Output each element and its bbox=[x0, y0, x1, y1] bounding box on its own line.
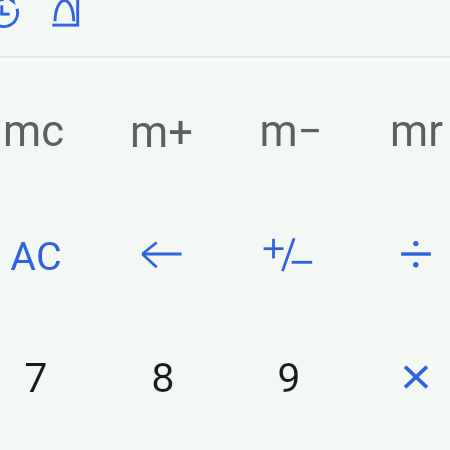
button[interactable]: m− bbox=[226, 72, 353, 194]
button[interactable]: 9 bbox=[226, 316, 353, 438]
staticText: 9 bbox=[277, 353, 301, 402]
button[interactable]: mr bbox=[353, 72, 450, 194]
button[interactable]: mc bbox=[0, 72, 99, 194]
button[interactable]: Plus minus bbox=[226, 194, 353, 316]
button[interactable]: Graph bbox=[39, 0, 91, 41]
staticText: AC bbox=[10, 233, 62, 279]
button[interactable]: Divide bbox=[353, 194, 450, 316]
button[interactable]: History bbox=[0, 0, 30, 39]
staticText: mc bbox=[3, 106, 64, 157]
staticText: m− bbox=[259, 106, 323, 157]
button[interactable]: AC bbox=[0, 194, 99, 316]
button[interactable]: 7 bbox=[0, 316, 99, 438]
staticText: 8 bbox=[151, 353, 175, 402]
button[interactable]: m+ bbox=[99, 72, 226, 194]
staticText: 7 bbox=[24, 353, 48, 402]
staticText: m+ bbox=[130, 107, 193, 158]
button[interactable]: Backspace bbox=[99, 194, 226, 316]
staticText: mr bbox=[390, 106, 443, 157]
button[interactable]: 8 bbox=[99, 316, 226, 438]
button[interactable]: Multiply bbox=[353, 316, 450, 438]
